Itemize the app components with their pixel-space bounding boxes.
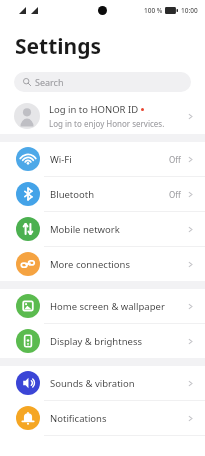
other: Open [186, 302, 195, 311]
staticText: More connections [50, 258, 186, 271]
button[interactable]: Mobile network [0, 212, 205, 246]
staticText: Log in to HONOR ID [49, 103, 139, 116]
button[interactable]: Notifications [0, 401, 205, 435]
staticText: 100 % [144, 6, 163, 15]
other: Open [186, 155, 195, 164]
staticText: Display & brightness [50, 335, 186, 348]
other: Open [186, 337, 195, 346]
staticText: Home screen & wallpaper [50, 300, 186, 313]
other: Open [186, 225, 195, 234]
other: Open [186, 260, 195, 269]
button[interactable]: Sounds & vibration [0, 366, 205, 400]
button[interactable]: Display & brightness [0, 324, 205, 358]
other: Open [186, 112, 195, 121]
staticText: Settings [15, 32, 102, 61]
staticText: Bluetooth [50, 188, 169, 201]
button[interactable]: Wi-Fi [0, 142, 205, 176]
other: Open [186, 379, 195, 388]
button[interactable]: Home screen & wallpaper [0, 289, 205, 323]
staticText: Search [35, 76, 64, 88]
staticText: Off [169, 154, 181, 165]
staticText: Sounds & vibration [50, 377, 186, 390]
staticText: 10:00 [181, 6, 198, 15]
button[interactable]: Log in to HONOR ID [0, 98, 205, 134]
button[interactable]: Search [14, 72, 191, 92]
other: Open [186, 414, 195, 423]
button[interactable]: More connections [0, 247, 205, 281]
staticText: Mobile network [50, 223, 186, 236]
staticText: Notifications [50, 412, 186, 425]
staticText: Wi-Fi [50, 153, 169, 166]
button[interactable]: Bluetooth [0, 177, 205, 211]
staticText: Log in to enjoy Honor services. [49, 118, 165, 129]
staticText: Off [169, 189, 181, 200]
other: Open [186, 190, 195, 199]
